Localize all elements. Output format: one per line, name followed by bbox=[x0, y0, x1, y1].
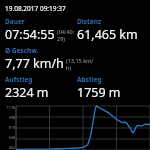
staticText: (13,15 km/h) bbox=[66, 57, 97, 71]
staticText: 1759 m bbox=[77, 84, 121, 101]
staticText: 19.08.2017 09:19:37 bbox=[5, 4, 66, 13]
staticText: 1176 bbox=[6, 105, 15, 110]
staticText: 07:54:55 bbox=[5, 26, 55, 43]
staticText: (04:40:29) bbox=[57, 28, 75, 42]
staticText: Dauer bbox=[5, 17, 25, 26]
staticText: Ø Geschw. bbox=[5, 46, 39, 55]
staticText: 462 bbox=[8, 145, 15, 150]
button[interactable]: Aufstieg bbox=[5, 75, 75, 101]
staticText: 998 bbox=[8, 115, 15, 120]
staticText: Abstieg bbox=[77, 75, 102, 84]
button[interactable]: Dauer bbox=[5, 17, 75, 43]
button[interactable]: Ø Geschw. bbox=[5, 46, 97, 72]
staticText: 2324 m bbox=[5, 84, 49, 101]
staticText: Distanz bbox=[77, 17, 102, 26]
staticText: 819 bbox=[8, 125, 15, 130]
button[interactable]: 1176 bbox=[0, 105, 150, 150]
staticText: 640 bbox=[8, 135, 15, 140]
staticText: 7,77 km/h bbox=[5, 55, 64, 72]
button[interactable]: Distanz bbox=[77, 17, 150, 43]
staticText: Aufstieg bbox=[5, 75, 33, 84]
button[interactable]: Abstieg bbox=[77, 75, 150, 101]
staticText: 61,465 km bbox=[77, 26, 138, 43]
